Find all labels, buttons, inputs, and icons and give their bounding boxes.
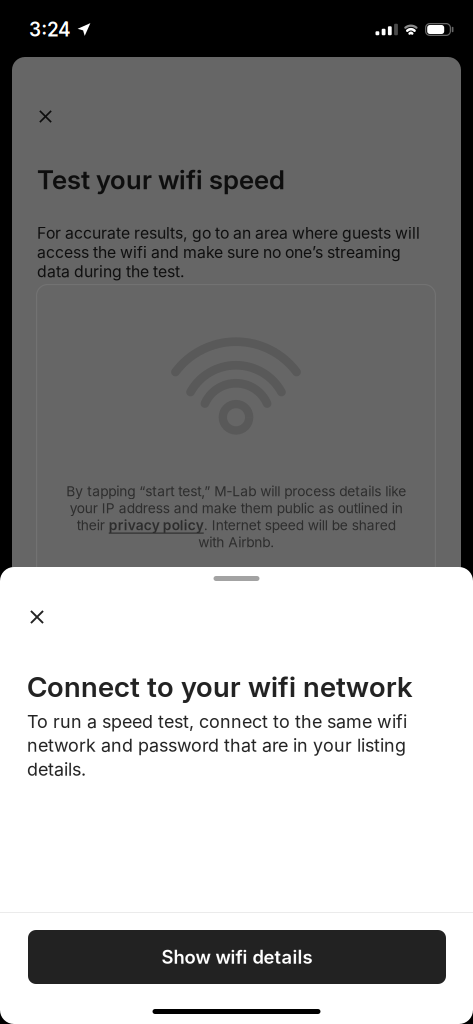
button[interactable]: Close: [18, 598, 56, 636]
staticText: 3:24: [29, 18, 71, 41]
staticText: Connect to your wifi network: [27, 670, 413, 704]
staticText: For accurate results, go to an area wher…: [37, 223, 420, 281]
staticText: To run a speed test, connect to the same…: [27, 711, 407, 780]
staticText: By tapping “start test,” M-Lab will proc…: [66, 483, 406, 551]
staticText: Show wifi details: [161, 946, 312, 968]
button[interactable]: Show wifi details: [28, 930, 446, 984]
button[interactable]: Close: [27, 98, 64, 135]
staticText: Test your wifi speed: [37, 164, 285, 195]
